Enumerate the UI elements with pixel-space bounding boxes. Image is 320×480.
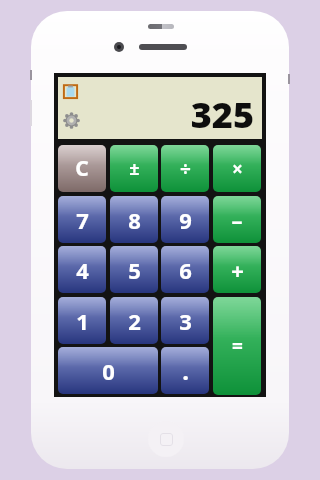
staticText: . <box>182 354 189 387</box>
button[interactable]: C <box>58 145 106 192</box>
button[interactable]: 1 <box>58 297 106 344</box>
staticText: 9 <box>179 205 192 235</box>
button[interactable]: 0 <box>58 347 158 394</box>
button[interactable]: = <box>213 297 261 395</box>
button[interactable]: ÷ <box>161 145 209 192</box>
button[interactable]: ± <box>110 145 158 192</box>
button[interactable]: – <box>213 196 261 243</box>
staticText: = <box>232 333 243 359</box>
button[interactable]: 9 <box>161 196 209 243</box>
button[interactable]: Copy result to clipboard <box>60 81 80 101</box>
staticText: 3 <box>179 306 192 336</box>
staticText: 1 <box>76 306 89 336</box>
button[interactable]: . <box>161 347 209 394</box>
button[interactable]: 2 <box>110 297 158 344</box>
button[interactable]: 3 <box>161 297 209 344</box>
button[interactable]: Settings <box>60 109 82 131</box>
button[interactable]: × <box>213 145 261 192</box>
button[interactable]: 7 <box>58 196 106 243</box>
button[interactable]: 6 <box>161 246 209 293</box>
staticText: – <box>231 205 243 235</box>
staticText: 0 <box>102 356 115 386</box>
staticText: 6 <box>179 255 192 285</box>
staticText: 5 <box>128 255 141 285</box>
staticText: C <box>75 154 89 183</box>
staticText: ± <box>129 156 140 181</box>
staticText: 8 <box>128 205 141 235</box>
staticText: 2 <box>128 306 141 336</box>
button[interactable]: 4 <box>58 246 106 293</box>
staticText: 7 <box>76 205 89 235</box>
staticText: 4 <box>76 255 89 285</box>
staticText: + <box>231 255 244 285</box>
staticText: 325 <box>190 90 254 139</box>
button[interactable]: + <box>213 246 261 293</box>
staticText: ÷ <box>180 156 191 182</box>
button[interactable]: 8 <box>110 196 158 243</box>
button[interactable]: Home <box>148 421 184 457</box>
staticText: × <box>232 156 243 182</box>
button[interactable]: 5 <box>110 246 158 293</box>
